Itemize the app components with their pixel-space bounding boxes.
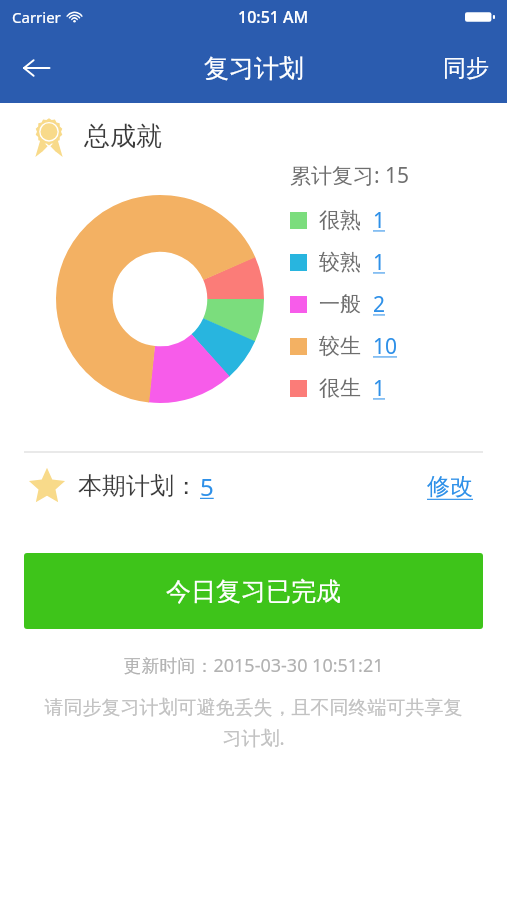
staticText: 2	[373, 290, 386, 319]
staticText: 较熟	[319, 249, 361, 275]
staticText: 很熟	[319, 207, 361, 233]
staticText: Carrier	[12, 7, 61, 27]
button[interactable]: 同步	[425, 44, 507, 93]
staticText: 5	[200, 470, 214, 503]
button[interactable]: 较生	[290, 326, 507, 366]
staticText: 同步	[443, 54, 489, 83]
button[interactable]: 很熟	[290, 200, 507, 240]
staticText: 今日复习已完成	[166, 576, 341, 607]
staticText: 一般	[319, 291, 361, 317]
staticText: 10	[373, 332, 398, 361]
staticText: 复习计划	[204, 53, 304, 84]
staticText: 累计复习: 15	[290, 161, 410, 190]
button[interactable]: 很生	[290, 368, 507, 408]
button[interactable]: 修改	[421, 466, 479, 507]
button[interactable]: 5	[198, 470, 216, 503]
button[interactable]: 一般	[290, 284, 507, 324]
staticText: 本期计划：	[78, 471, 198, 501]
staticText: 1	[373, 248, 386, 277]
staticText: 总成就	[84, 120, 162, 153]
staticText: 请同步复习计划可避免丢失，且不同终端可共享复习计划.	[36, 696, 471, 750]
staticText: 1	[373, 374, 386, 403]
staticText: 很生	[319, 375, 361, 401]
staticText: 10:51 AM	[238, 6, 309, 28]
staticText: 1	[373, 206, 386, 235]
staticText: 较生	[319, 333, 361, 359]
button[interactable]: 较熟	[290, 242, 507, 282]
button[interactable]: Back	[8, 40, 64, 96]
staticText: 修改	[427, 472, 473, 501]
staticText: 更新时间：2015-03-30 10:51:21	[0, 653, 507, 678]
button[interactable]: 今日复习已完成	[24, 553, 483, 629]
